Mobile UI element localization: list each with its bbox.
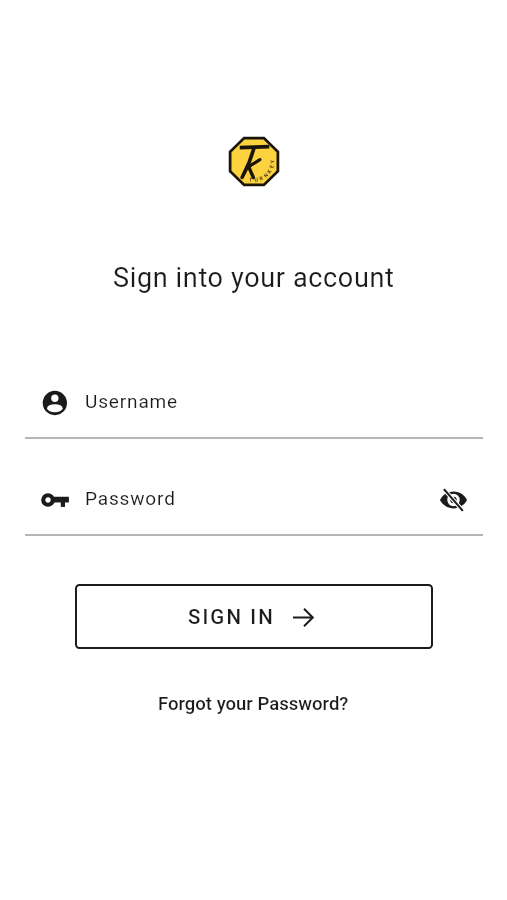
staticText: Password: [85, 487, 176, 509]
button[interactable]: Username: [42, 388, 470, 418]
button[interactable]: Show password: [436, 485, 470, 515]
button[interactable]: Password: [42, 485, 470, 515]
button[interactable]: Forgot your Password?: [158, 693, 349, 715]
button[interactable]: SIGN IN: [75, 584, 433, 649]
staticText: Forgot your Password?: [158, 693, 349, 715]
staticText: Username: [85, 390, 179, 412]
staticText: SIGN IN: [188, 605, 275, 629]
staticText: Sign into your account: [113, 262, 395, 294]
